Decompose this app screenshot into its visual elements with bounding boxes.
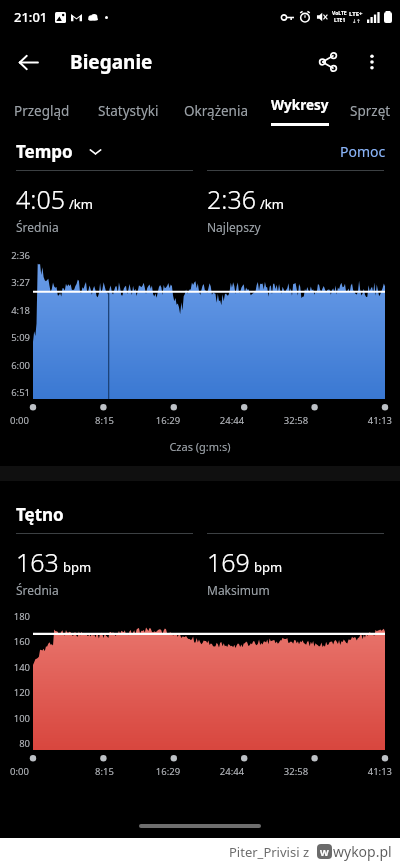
staticText: 100 [0,712,30,725]
staticText: 169 [207,545,250,579]
staticText: 4:05 [16,182,65,216]
staticText: 24:44 [200,765,264,778]
staticText: Statystyki [98,102,159,120]
staticText: Tętno [16,503,64,526]
staticText: 41:13 [328,765,392,778]
staticText: 8:15 [73,414,136,427]
staticText: Bieganie [70,49,153,75]
staticText: 5:09 [0,331,30,344]
staticText: 6:51 [0,386,30,399]
button[interactable]: Statystyki [84,90,172,132]
staticText: 2:36 [207,182,256,216]
button[interactable]: Pomoc [340,142,386,161]
staticText: wykop.pl [333,842,392,861]
staticText: 16:29 [136,414,200,427]
staticText: 32:58 [264,414,328,427]
staticText: VoLTE [332,10,347,17]
staticText: Średnia [16,219,59,235]
staticText: 80 [0,737,30,750]
staticText: W [320,846,329,858]
staticText: 6:00 [0,359,30,372]
staticText: Piter_Privisi z [229,843,310,861]
staticText: 24:44 [200,414,264,427]
button[interactable]: Okrążenia [172,90,260,132]
staticText: Tempo [16,140,73,163]
staticText: 3:27 [0,276,30,289]
staticText: Najlepszy [207,219,261,235]
staticText: 41:13 [328,414,392,427]
button[interactable]: Wykresy [260,90,340,132]
staticText: bpm [63,558,92,576]
staticText: Okrążenia [184,102,248,120]
staticText: 120 [0,686,30,699]
staticText: Przegląd [14,102,70,120]
staticText: Maksimum [207,582,270,598]
staticText: Średnia [16,582,59,598]
staticText: LTE1 [334,17,346,24]
button[interactable]: Tętno [16,503,64,526]
staticText: 0:00 [10,414,73,427]
staticText: 160 [0,635,30,648]
staticText: 0:00 [10,765,73,778]
button[interactable]: Share [306,40,350,84]
button[interactable]: Przegląd [0,90,84,132]
staticText: Czas (g:m:s) [0,439,400,454]
staticText: LTE+ [349,10,363,18]
button[interactable]: Sprzęt [340,90,400,132]
staticText: 180 [0,610,30,623]
staticText: Wykresy [271,96,329,114]
staticText: 21:01 [14,8,48,26]
staticText: /km [69,195,93,213]
staticText: 2:36 [0,249,30,262]
staticText: 4:18 [0,304,30,317]
staticText: /km [260,195,284,213]
button[interactable]: Tempo [16,140,102,163]
staticText: Sprzęt [350,102,391,120]
staticText: ↓↑ [352,18,361,24]
staticText: 8:15 [73,765,136,778]
staticText: bpm [254,558,283,576]
button[interactable]: More options [350,40,394,84]
staticText: 32:58 [264,765,328,778]
staticText: 163 [16,545,59,579]
button[interactable]: Back [6,40,50,84]
staticText: 16:29 [136,765,200,778]
staticText: 140 [0,661,30,674]
staticText: Pomoc [340,142,386,161]
